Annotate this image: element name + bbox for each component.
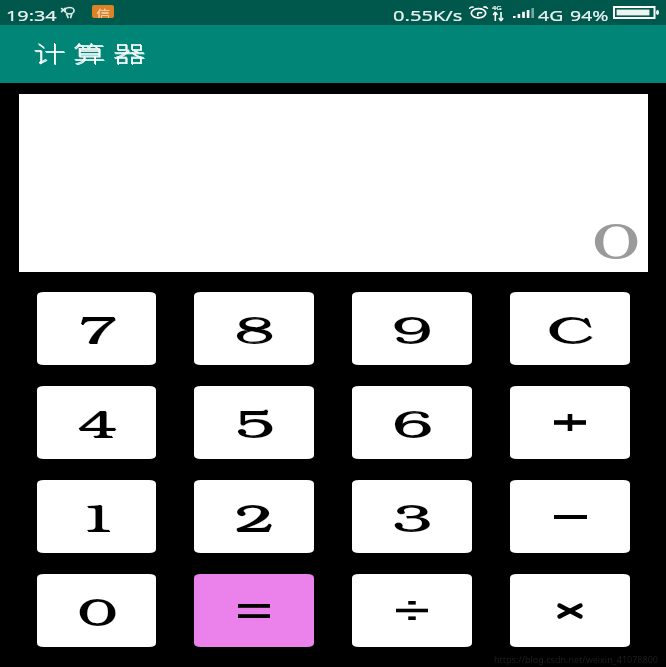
button[interactable]: 6 xyxy=(352,386,472,459)
staticText: 94% xyxy=(570,5,609,25)
button[interactable]: C xyxy=(510,292,630,365)
button[interactable]: = xyxy=(194,574,314,647)
button[interactable]: - xyxy=(510,480,630,553)
staticText: 3 xyxy=(392,490,432,541)
button[interactable]: 1 xyxy=(37,480,156,553)
button[interactable]: 4 xyxy=(37,386,156,459)
button[interactable]: 5 xyxy=(194,386,314,459)
button[interactable]: 8 xyxy=(194,292,314,365)
staticText: 9 xyxy=(392,303,433,354)
staticText: 7 xyxy=(77,302,117,353)
staticText: 8 xyxy=(234,302,274,353)
button[interactable]: 2 xyxy=(194,480,314,553)
staticText: C xyxy=(546,302,595,353)
staticText: 9 xyxy=(392,302,432,353)
staticText: 计 算 器 xyxy=(33,35,147,68)
staticText: 5 xyxy=(234,397,275,448)
button[interactable]: 0 xyxy=(37,574,156,647)
staticText: 2 xyxy=(234,490,274,541)
staticText: 0 xyxy=(77,585,118,636)
staticText: 5 xyxy=(234,396,274,447)
staticText: 2 xyxy=(234,491,275,542)
button[interactable]: 9 xyxy=(352,292,472,365)
staticText: 6 xyxy=(392,396,432,447)
staticText: 4 xyxy=(77,397,118,448)
button[interactable]: × xyxy=(510,574,630,647)
staticText: 计 算 器 xyxy=(34,35,147,68)
button[interactable]: ÷ xyxy=(352,574,472,647)
staticText: 6 xyxy=(392,397,433,448)
staticText: 信 xyxy=(96,5,111,18)
staticText: 1 xyxy=(77,491,118,542)
staticText: https://blog.csdn.net/weixin_41078800 xyxy=(494,653,658,665)
staticText: 0 xyxy=(592,207,640,271)
staticText: 19:34 xyxy=(6,5,57,25)
staticText: 1 xyxy=(77,490,117,541)
staticText: 4G xyxy=(492,4,502,12)
staticText: 0.55K/s xyxy=(393,5,463,25)
button[interactable]: + xyxy=(510,386,630,459)
staticText: 7 xyxy=(77,303,118,354)
button[interactable]: 3 xyxy=(352,480,472,553)
staticText: 4 xyxy=(77,396,117,447)
staticText: 4G xyxy=(538,5,564,25)
button[interactable]: 7 xyxy=(37,292,156,365)
staticText: 8 xyxy=(234,303,275,354)
staticText: C xyxy=(547,303,596,354)
staticText: 3 xyxy=(392,491,433,542)
staticText: 0 xyxy=(77,584,117,635)
